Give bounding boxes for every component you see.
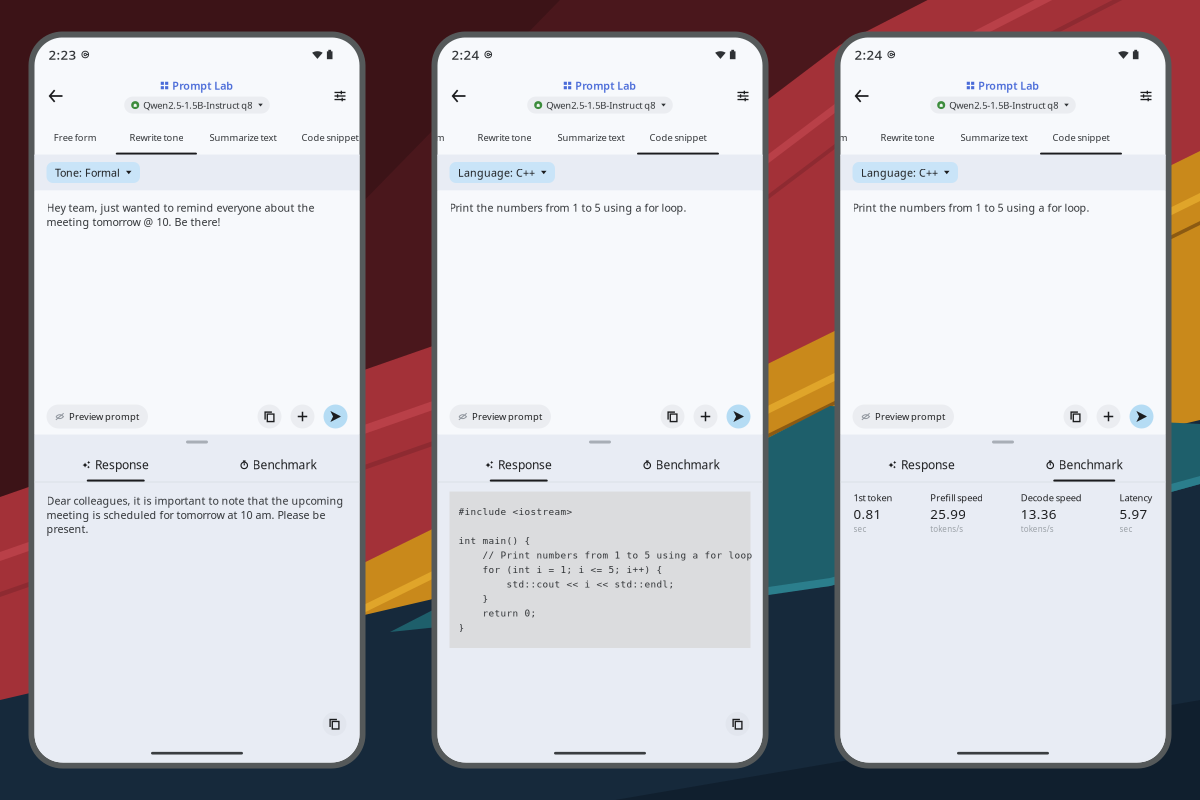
staticText: int main() { (458, 535, 530, 546)
staticText: Benchmark (252, 457, 316, 472)
staticText: Preview prompt (472, 410, 542, 423)
button[interactable]: Copy result (725, 712, 749, 736)
button[interactable]: Back (847, 82, 875, 110)
staticText: tokens/s (930, 524, 963, 534)
button[interactable]: Code snippet (637, 119, 719, 155)
button[interactable]: Free form (34, 119, 116, 155)
button[interactable]: Preview prompt (46, 404, 148, 428)
staticText: Code snippet (301, 131, 358, 144)
staticText: sec (853, 524, 866, 534)
button[interactable]: Back (41, 82, 69, 110)
button[interactable]: Copy result (322, 712, 346, 736)
staticText: Prefill speed (930, 491, 983, 504)
button[interactable]: Benchmark (197, 457, 359, 482)
button[interactable]: Code snippet (289, 119, 371, 155)
staticText: Free form (402, 131, 445, 144)
staticText: 1st token (853, 491, 892, 504)
staticText: Summarize text (960, 131, 1027, 144)
staticText: 2:24 (451, 46, 479, 63)
staticText: Language: C++ (458, 165, 535, 180)
staticText: Rewrite tone (477, 131, 531, 144)
staticText: 25.99 (930, 505, 966, 523)
staticText: for (int i = 1; i <= 5; i++) { (458, 564, 662, 575)
button[interactable]: Send (1129, 404, 1153, 428)
staticText: 13.36 (1021, 505, 1057, 523)
button[interactable]: Copy (660, 404, 684, 428)
button[interactable]: Summarize text (948, 119, 1040, 155)
button[interactable]: Response (437, 457, 600, 482)
staticText: Code snippet (1052, 131, 1109, 144)
staticText: Print the numbers from 1 to 5 using a fo… (852, 200, 1089, 215)
staticText: Tone: Formal (55, 165, 120, 180)
staticText: Language: C++ (861, 165, 938, 180)
staticText: Code snippet (649, 131, 706, 144)
staticText: tokens/s (1021, 524, 1054, 534)
button[interactable]: Summarize text (545, 119, 637, 155)
staticText: 2:23 (48, 46, 76, 63)
staticText: } (458, 622, 464, 633)
button[interactable]: Summarize text (197, 119, 289, 155)
button[interactable]: Preview prompt (449, 404, 551, 428)
button[interactable]: Response (840, 457, 1003, 482)
button[interactable]: Free form (382, 119, 464, 155)
staticText: 2:24 (854, 46, 882, 63)
staticText: Qwen2.5-1.5B-Instruct q8 (949, 99, 1058, 111)
button[interactable]: Settings (327, 83, 352, 108)
staticText: Benchmark (655, 457, 719, 472)
button[interactable]: Language: C++ (449, 162, 555, 183)
staticText: std::cout << i << std::endl; (458, 579, 674, 590)
staticText: Qwen2.5-1.5B-Instruct q8 (143, 99, 252, 111)
staticText: Rewrite tone (129, 131, 183, 144)
button[interactable]: Rewrite tone (116, 119, 197, 155)
staticText: Latency (1119, 491, 1152, 504)
staticText: Response (95, 457, 149, 472)
staticText: Decode speed (1021, 491, 1082, 504)
button[interactable]: Settings (730, 83, 755, 108)
staticText: Dear colleagues, it is important to note… (46, 493, 343, 536)
staticText: Prompt Lab (172, 78, 233, 93)
button[interactable]: Settings (1133, 83, 1158, 108)
staticText: return 0; (458, 608, 536, 619)
button[interactable]: Add (1096, 404, 1120, 428)
staticText: sec (1119, 524, 1132, 534)
button[interactable]: Add (693, 404, 717, 428)
button[interactable]: Copy (1063, 404, 1087, 428)
button[interactable]: Qwen2.5-1.5B-Instruct q8 (527, 97, 673, 114)
staticText: Preview prompt (875, 410, 945, 423)
button[interactable]: Preview prompt (852, 404, 954, 428)
staticText: Rewrite tone (880, 131, 934, 144)
staticText: Prompt Lab (978, 78, 1039, 93)
button[interactable]: Rewrite tone (464, 119, 545, 155)
staticText: Summarize text (557, 131, 624, 144)
staticText: Free form (54, 131, 97, 144)
button[interactable]: Response (34, 457, 197, 482)
staticText: Print the numbers from 1 to 5 using a fo… (449, 200, 686, 215)
staticText: 0.81 (853, 505, 881, 523)
button[interactable]: Rewrite tone (867, 119, 948, 155)
staticText: Prompt Lab (575, 78, 636, 93)
staticText: Summarize text (209, 131, 276, 144)
button[interactable]: Send (726, 404, 750, 428)
staticText: Response (901, 457, 955, 472)
staticText: } (458, 593, 488, 604)
button[interactable]: Code snippet (1040, 119, 1122, 155)
button[interactable]: Qwen2.5-1.5B-Instruct q8 (124, 97, 270, 114)
staticText: Free form (805, 131, 848, 144)
button[interactable]: Benchmark (1003, 457, 1165, 482)
staticText: #include <iostream> (458, 506, 572, 517)
button[interactable]: Tone: Formal (46, 162, 140, 183)
staticText: Hey team, just wanted to remind everyone… (46, 200, 314, 229)
button[interactable]: Language: C++ (852, 162, 958, 183)
staticText: 5.97 (1119, 505, 1147, 523)
button[interactable]: Copy (257, 404, 281, 428)
staticText: Benchmark (1058, 457, 1122, 472)
staticText: Qwen2.5-1.5B-Instruct q8 (546, 99, 655, 111)
button[interactable]: Qwen2.5-1.5B-Instruct q8 (930, 97, 1076, 114)
staticText: Preview prompt (69, 410, 139, 423)
staticText: // Print numbers from 1 to 5 using a for… (458, 550, 752, 561)
button[interactable]: Free form (785, 119, 867, 155)
button[interactable]: Send (323, 404, 347, 428)
button[interactable]: Back (444, 82, 472, 110)
button[interactable]: Add (290, 404, 314, 428)
button[interactable]: Benchmark (600, 457, 762, 482)
